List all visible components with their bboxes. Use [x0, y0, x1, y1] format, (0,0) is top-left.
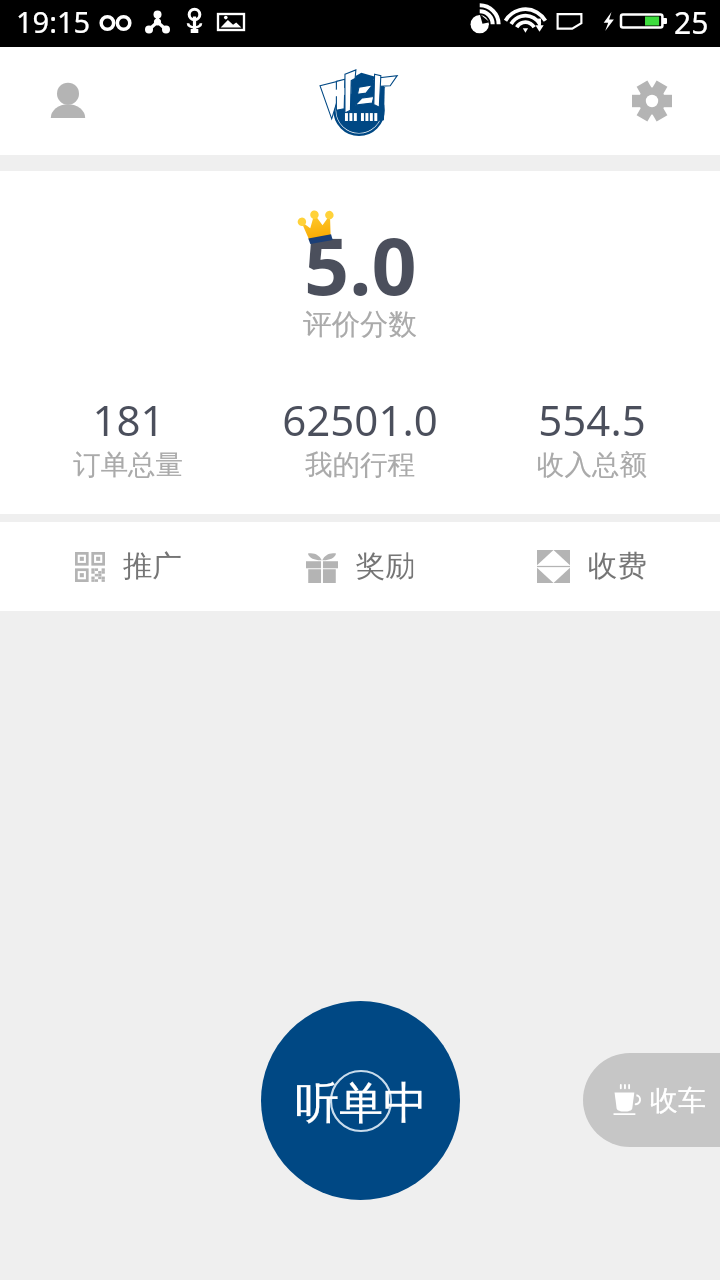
- staticText: 554.5: [538, 391, 646, 448]
- staticText: 181: [92, 391, 165, 448]
- staticText: 评价分数: [303, 307, 417, 343]
- staticText: 62501.0: [282, 391, 438, 448]
- staticText: 5.0: [304, 211, 417, 319]
- button[interactable]: 奖励: [244, 522, 476, 611]
- staticText: 19:15: [16, 2, 91, 41]
- staticText: 听单中: [295, 1076, 427, 1131]
- button[interactable]: Profile: [34, 67, 102, 135]
- staticText: 我的行程: [305, 448, 415, 483]
- button[interactable]: 听单中: [261, 1001, 460, 1200]
- button[interactable]: Settings: [618, 67, 686, 135]
- button[interactable]: Logo: [320, 67, 398, 139]
- staticText: 推广: [123, 548, 182, 585]
- button[interactable]: 62501.0: [244, 391, 476, 483]
- button[interactable]: 收车: [583, 1053, 720, 1147]
- staticText: 收车: [650, 1083, 706, 1118]
- button[interactable]: 181: [12, 391, 244, 483]
- button[interactable]: 推广: [12, 522, 244, 611]
- staticText: 收入总额: [537, 448, 647, 483]
- staticText: 25: [674, 2, 709, 43]
- staticText: 订单总量: [73, 448, 183, 483]
- button[interactable]: 554.5: [476, 391, 708, 483]
- staticText: 收费: [588, 548, 647, 585]
- staticText: 奖励: [356, 548, 415, 585]
- button[interactable]: 收费: [476, 522, 708, 611]
